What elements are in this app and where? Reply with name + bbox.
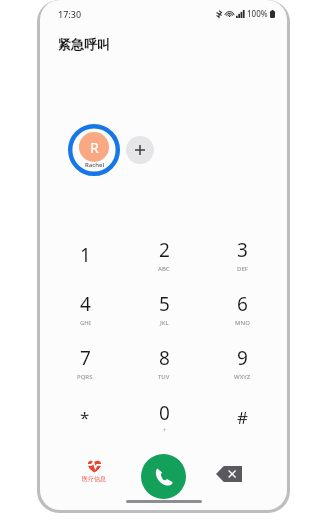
staticText: 5 — [159, 291, 170, 317]
staticText: JKL — [160, 319, 169, 327]
staticText: PQRS — [77, 373, 93, 381]
staticText: 2 — [159, 237, 170, 263]
button[interactable]: Backspace — [216, 466, 242, 482]
staticText: 紧急呼叫 — [58, 36, 110, 52]
staticText: 7 — [80, 345, 91, 371]
button[interactable]: Add contact — [126, 136, 154, 164]
staticText: 1 — [80, 242, 91, 268]
button[interactable]: 0 — [130, 390, 198, 444]
staticText: 100% — [247, 8, 268, 19]
staticText: R — [90, 138, 99, 157]
staticText: 3 — [237, 237, 248, 263]
staticText: 4 — [80, 291, 91, 317]
staticText: DEF — [237, 265, 248, 273]
button[interactable]: # — [208, 390, 276, 444]
button[interactable]: 5 — [130, 282, 198, 336]
staticText: GHI — [80, 319, 91, 327]
button[interactable]: 8 — [130, 336, 198, 390]
staticText: 8 — [159, 345, 170, 371]
staticText: 0 — [159, 400, 170, 426]
staticText: * — [80, 406, 90, 429]
staticText: 医疗信息 — [82, 475, 106, 483]
button[interactable]: 1 — [51, 228, 119, 282]
staticText: + — [163, 427, 166, 434]
staticText: ABC — [158, 265, 170, 273]
staticText: Rachel — [85, 161, 104, 169]
button[interactable]: 2 — [130, 228, 198, 282]
staticText: 9 — [237, 345, 248, 371]
button[interactable]: 3 — [208, 228, 276, 282]
button[interactable]: R — [68, 124, 120, 176]
button[interactable]: 6 — [208, 282, 276, 336]
staticText: # — [237, 406, 248, 429]
button[interactable]: 4 — [51, 282, 119, 336]
button[interactable]: Call — [141, 454, 186, 499]
button[interactable]: 9 — [208, 336, 276, 390]
button[interactable]: 7 — [51, 336, 119, 390]
staticText: 17:30 — [58, 8, 82, 20]
button[interactable]: 医疗信息 — [72, 458, 116, 483]
button[interactable]: * — [51, 390, 119, 444]
staticText: TUV — [158, 373, 170, 381]
staticText: 6 — [237, 291, 248, 317]
staticText: WXYZ — [234, 373, 251, 381]
staticText: MNO — [235, 319, 250, 327]
